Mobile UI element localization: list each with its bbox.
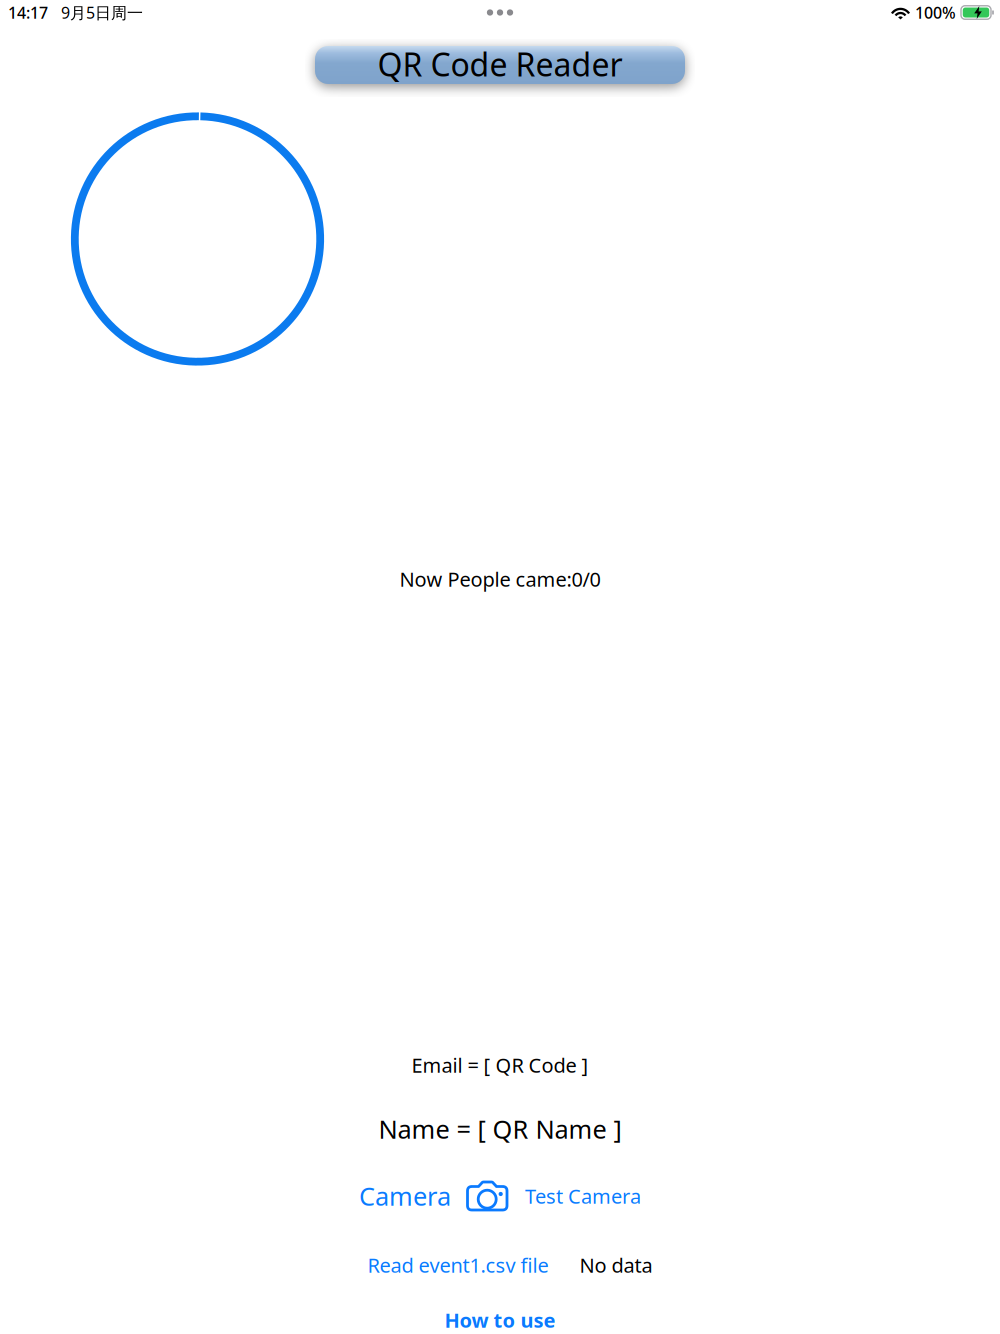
staticText: No data (579, 1252, 652, 1278)
staticText: 100% (915, 2, 956, 23)
button[interactable]: Open camera (466, 1180, 509, 1211)
staticText: How to use (444, 1307, 555, 1333)
staticText: Read event1.csv file (367, 1252, 548, 1278)
button[interactable]: How to use (444, 1307, 555, 1333)
staticText: Test Camera (525, 1183, 641, 1209)
staticText: Email = [ QR Code ] (411, 1052, 588, 1078)
button[interactable]: Read event1.csv file (367, 1252, 548, 1278)
staticText: QR Code Reader (377, 43, 622, 85)
button[interactable]: Camera (359, 1179, 451, 1213)
staticText: Name = [ QR Name ] (378, 1112, 621, 1146)
staticText: 14:17 (8, 2, 48, 23)
staticText: Now People came:0/0 (399, 566, 600, 592)
staticText: Camera (359, 1179, 451, 1213)
staticText: 9月5日周一 (61, 2, 143, 23)
button[interactable]: Test Camera (525, 1183, 641, 1209)
